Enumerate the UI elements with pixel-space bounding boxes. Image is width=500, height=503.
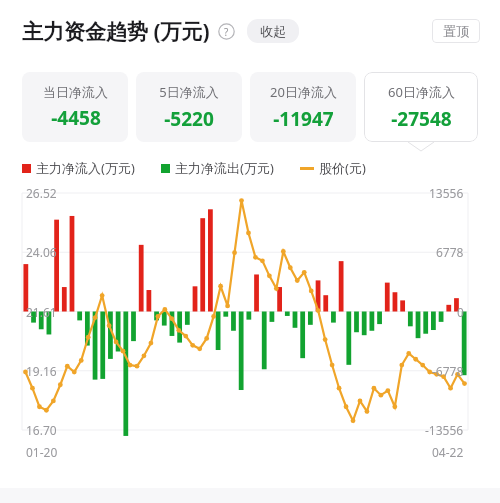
button[interactable]: 置顶	[432, 19, 480, 43]
staticText: 置顶	[443, 23, 469, 39]
staticText: 股价(元)	[319, 159, 366, 177]
staticText: 5日净流入	[159, 83, 219, 101]
staticText: 主力资金趋势 (万元)	[22, 17, 210, 46]
staticText: 0	[457, 304, 464, 320]
staticText: 收起	[260, 23, 286, 39]
button[interactable]: 主力净流入(万元)	[22, 159, 135, 177]
staticText: -6778	[432, 363, 464, 379]
button[interactable]: Help	[218, 23, 235, 40]
staticText: 16.70	[26, 422, 57, 438]
button[interactable]: 主力净流出(万元)	[161, 159, 274, 177]
staticText: 主力净流出(万元)	[175, 159, 274, 177]
button[interactable]: 60日净流入	[364, 72, 478, 142]
staticText: -27548	[391, 106, 452, 132]
staticText: 当日净流入	[43, 84, 108, 100]
button[interactable]: 20日净流入	[250, 72, 356, 142]
staticText: -11947	[273, 106, 334, 132]
staticText: 24.06	[26, 244, 57, 260]
staticText: -13556	[425, 422, 464, 438]
staticText: 主力净流入(万元)	[36, 159, 135, 177]
staticText: -4458	[51, 105, 101, 131]
button[interactable]: 当日净流入	[22, 72, 128, 142]
staticText: 04-22	[432, 444, 464, 460]
staticText: 20日净流入	[270, 83, 337, 101]
staticText: 19.16	[26, 363, 57, 379]
staticText: 01-20	[26, 444, 58, 460]
staticText: ?	[224, 25, 229, 39]
button[interactable]: 股价(元)	[300, 159, 366, 177]
button[interactable]: 5日净流入	[136, 72, 242, 142]
button[interactable]: 收起	[247, 19, 299, 43]
staticText: -5220	[164, 106, 214, 132]
staticText: 13556	[429, 185, 464, 201]
staticText: 6778	[436, 244, 464, 260]
staticText: 21.61	[26, 304, 57, 320]
staticText: 26.52	[26, 185, 57, 201]
staticText: 60日净流入	[388, 83, 455, 101]
